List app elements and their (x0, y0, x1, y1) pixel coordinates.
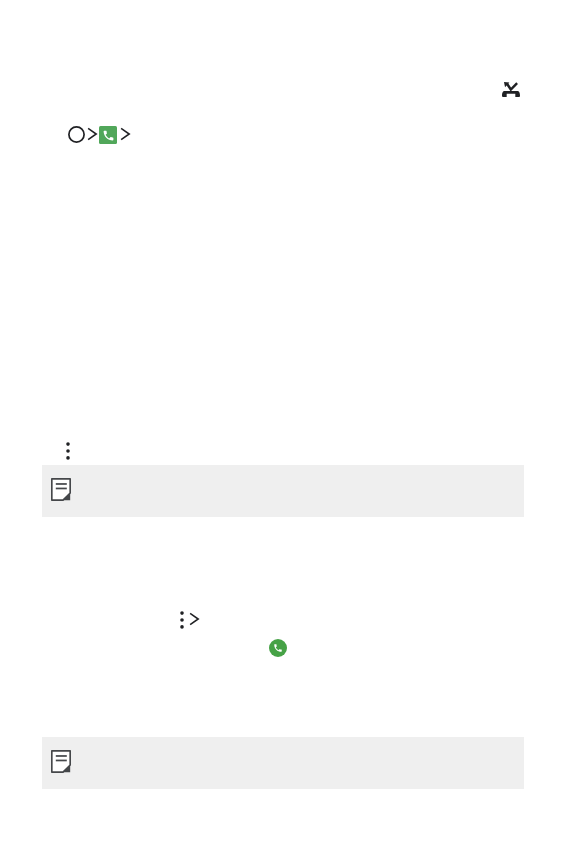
button[interactable]: More options (176, 611, 188, 629)
button[interactable]: Phone app (99, 126, 117, 144)
button[interactable]: Missed call (502, 82, 520, 97)
button[interactable] (42, 465, 524, 517)
button[interactable]: Call (269, 639, 287, 657)
button[interactable] (42, 737, 524, 789)
button[interactable]: Home (68, 126, 85, 143)
button[interactable]: More options (62, 442, 74, 460)
